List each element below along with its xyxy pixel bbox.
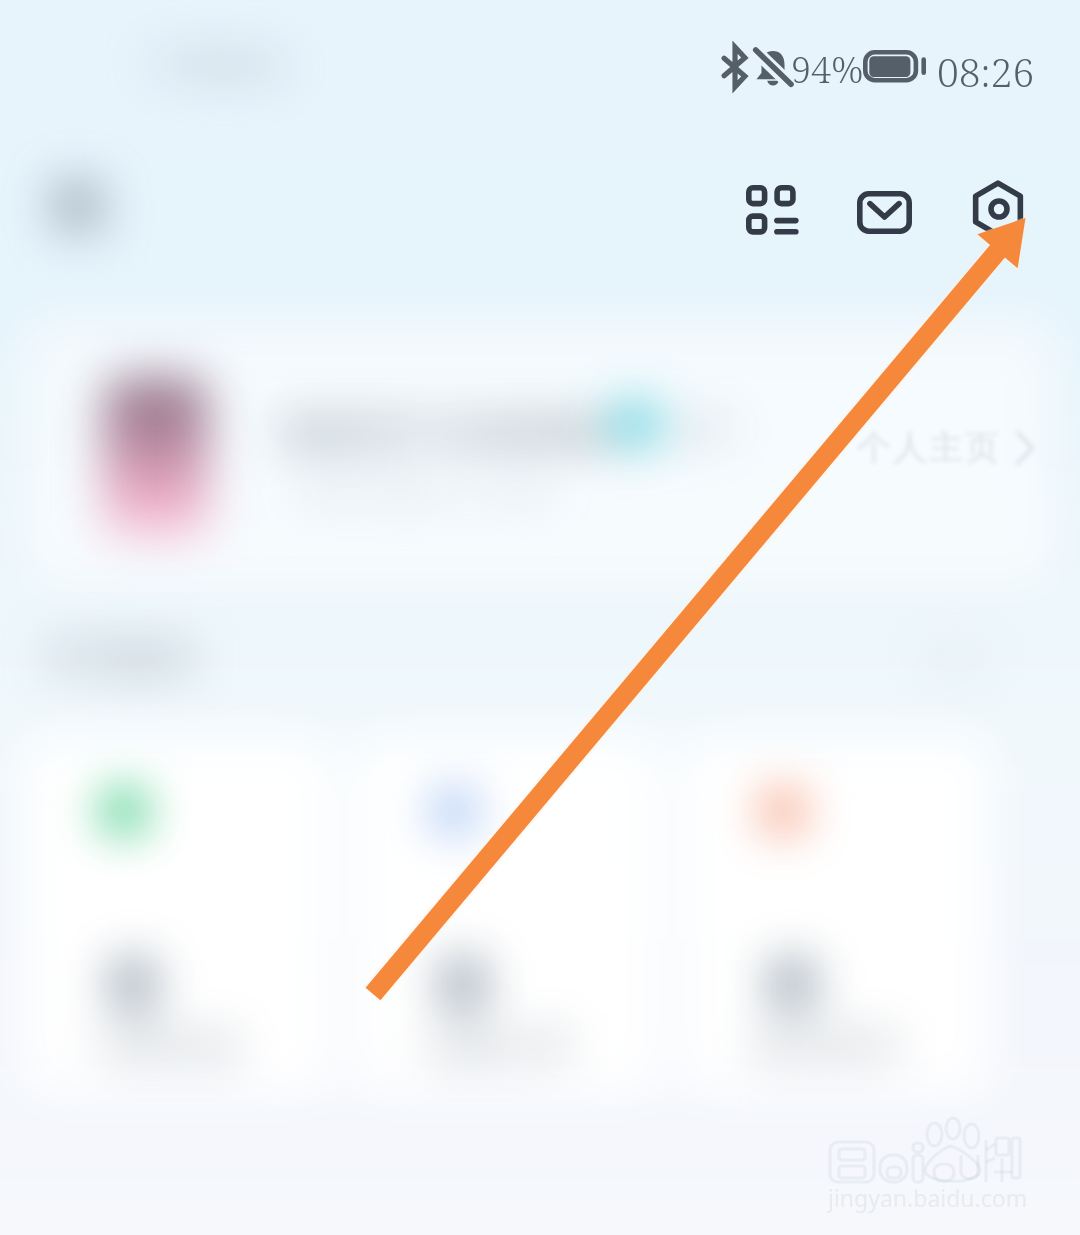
staticText: 会员 [670,410,730,448]
staticText: 个人主页 [856,426,1000,469]
staticText: 话费充值 [96,1024,240,1069]
button[interactable]: Messages [828,156,940,268]
staticText: 流量办理 [426,1024,570,1069]
button[interactable]: Settings [942,153,1054,265]
button[interactable]: 账单查询 [681,736,992,1096]
staticText: 08:26 [937,45,1035,98]
staticText: 我 [50,176,102,242]
staticText: 常用服务 [46,634,198,682]
button[interactable]: Grid view [715,154,827,266]
button[interactable]: 个人主页 [856,426,1036,469]
staticText: 94% [791,45,864,94]
staticText: 账单查询 [755,1024,899,1069]
button[interactable]: 话费充值 [22,736,334,1096]
button[interactable]: 流量办理 [352,736,663,1096]
button[interactable] [22,318,1058,586]
staticText: 昵称用户名称8888 [282,404,614,459]
staticText: jingyan.baidu.com [828,1182,1028,1213]
